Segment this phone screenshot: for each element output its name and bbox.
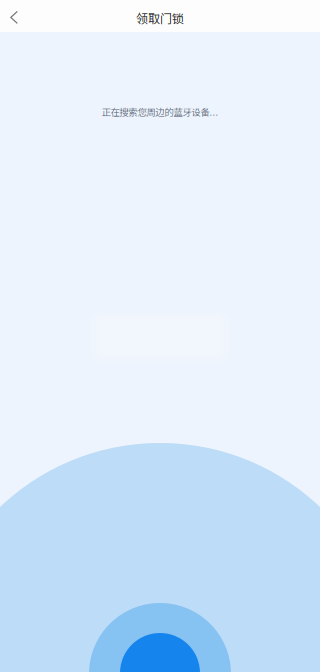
staticText: 正在搜索您周边的蓝牙设备... (101, 105, 218, 118)
button[interactable]: 返回 (0, 0, 36, 32)
staticText: 领取门锁 (136, 9, 184, 27)
